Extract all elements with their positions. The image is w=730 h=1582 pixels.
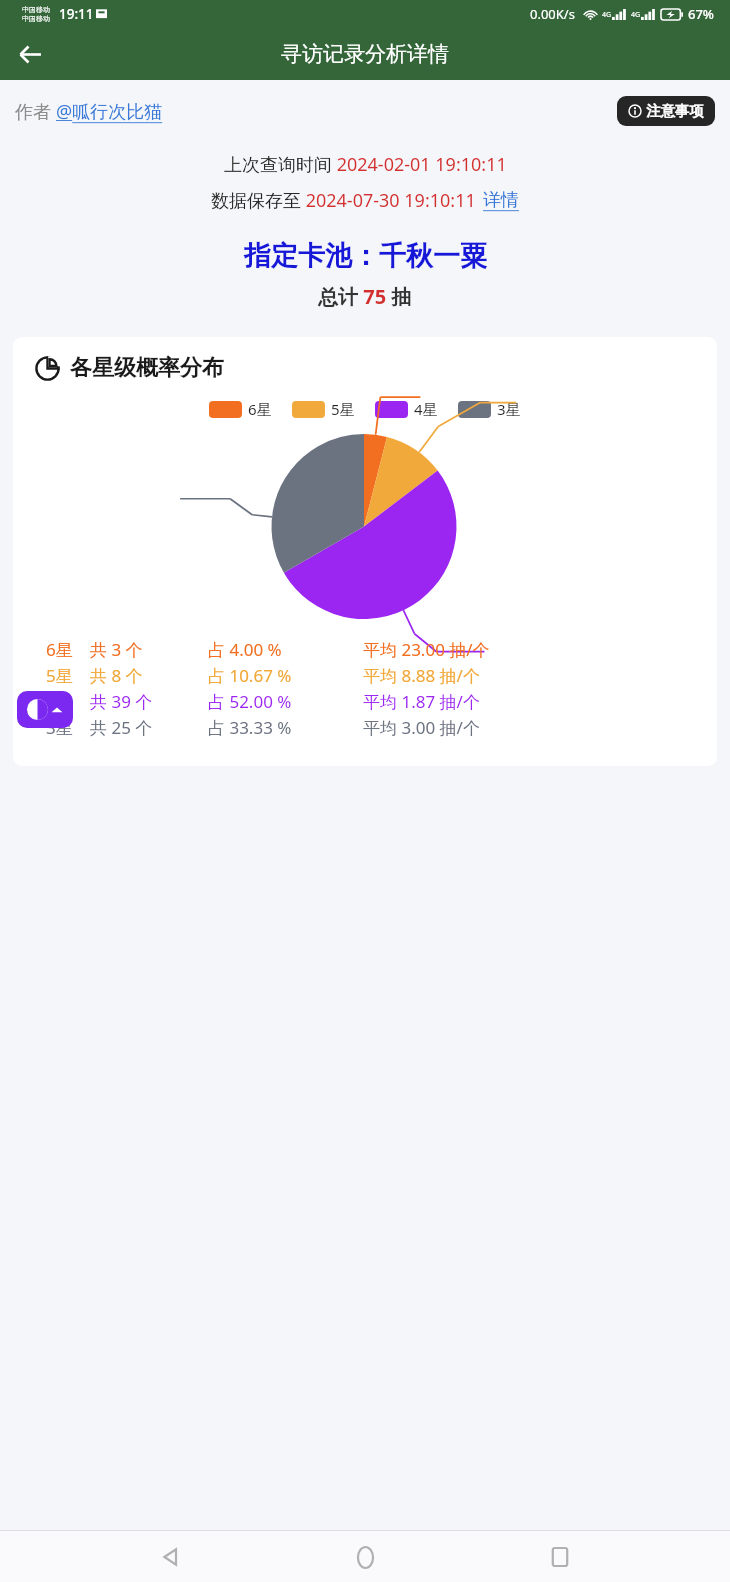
- staticText: 占 4.00 %: [208, 638, 363, 661]
- staticText: 平均 1.87 抽/个: [363, 690, 480, 713]
- staticText: 共 39 个: [90, 690, 208, 713]
- staticText: 3星: [497, 399, 521, 419]
- staticText: 0.00K/s: [530, 5, 575, 23]
- button[interactable]: Back: [145, 1532, 195, 1582]
- staticText: 5星: [46, 664, 90, 687]
- staticText: 中国移动: [22, 14, 50, 23]
- button[interactable]: @呱行次比猫: [56, 99, 163, 124]
- staticText: 平均 3.00 抽/个: [363, 716, 480, 739]
- staticText: 共 25 个: [90, 716, 208, 739]
- staticText: 共 3 个: [90, 638, 208, 661]
- staticText: 5星: [331, 399, 355, 419]
- button[interactable]: 详情: [483, 189, 519, 212]
- staticText: 占 10.67 %: [208, 664, 363, 687]
- staticText: 4G: [602, 10, 612, 20]
- staticText: 平均 23.00 抽/个: [363, 638, 490, 661]
- staticText: 中国移动: [22, 5, 50, 14]
- staticText: 寻访记录分析详情: [281, 41, 449, 67]
- button[interactable]: Back: [8, 32, 52, 76]
- staticText: 作者: [15, 99, 56, 124]
- staticText: 6星: [248, 399, 272, 419]
- staticText: 占 52.00 %: [208, 690, 363, 713]
- staticText: 3星: [46, 716, 90, 739]
- staticText: 注意事项: [646, 102, 704, 120]
- staticText: 19:11: [59, 5, 94, 23]
- staticText: 上次查询时间 2024-02-01 19:10:11: [224, 152, 507, 177]
- staticText: 总计 75 抽: [318, 283, 412, 310]
- staticText: 4星: [46, 690, 90, 713]
- button[interactable]: Home: [340, 1532, 390, 1582]
- staticText: 占 33.33 %: [208, 716, 363, 739]
- button[interactable]: Toggle theme: [17, 691, 73, 728]
- staticText: 各星级概率分布: [70, 354, 224, 382]
- staticText: 6星: [46, 638, 90, 661]
- button[interactable]: 注意事项: [617, 96, 715, 126]
- staticText: 67%: [688, 5, 714, 23]
- staticText: 数据保存至 2024-07-30 19:10:11: [211, 188, 476, 213]
- staticText: 4星: [414, 399, 438, 419]
- button[interactable]: Recents: [535, 1532, 585, 1582]
- staticText: 4G: [631, 10, 641, 20]
- staticText: 平均 8.88 抽/个: [363, 664, 480, 687]
- staticText: 共 8 个: [90, 664, 208, 687]
- staticText: 指定卡池：千秋一粟: [244, 239, 487, 273]
